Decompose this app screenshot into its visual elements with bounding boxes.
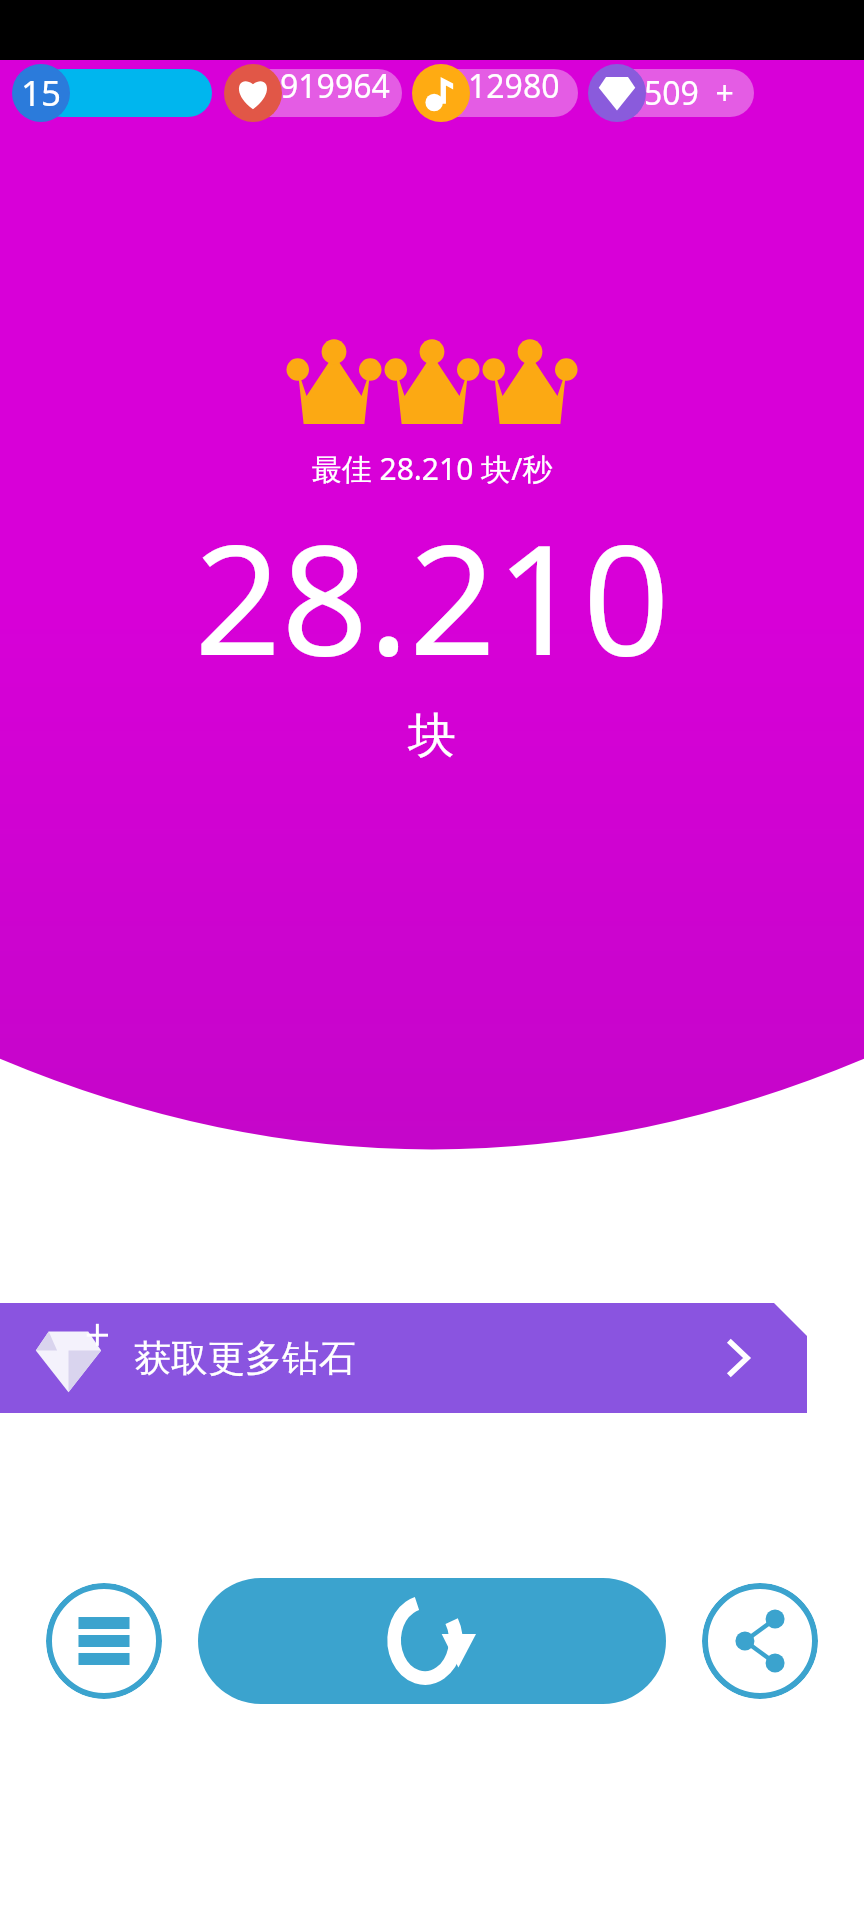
staticText: 28.210 [0, 493, 864, 700]
button[interactable]: 获取更多钻石 [0, 1303, 807, 1413]
button[interactable]: Share [702, 1583, 818, 1699]
button[interactable]: 12980 + [412, 64, 578, 122]
staticText: 最佳 28.210 块/秒 [0, 448, 864, 489]
staticText: 919964+ [280, 64, 402, 122]
button[interactable]: 509 + [588, 64, 754, 122]
staticText: 12980 + [468, 64, 578, 122]
button[interactable]: 15 [12, 64, 212, 122]
button[interactable]: 919964+ [224, 64, 402, 122]
button[interactable]: Restart [198, 1578, 666, 1704]
staticText: 509 + [644, 71, 734, 115]
button[interactable]: Menu [46, 1583, 162, 1699]
staticText: 块 [0, 706, 864, 766]
staticText: 获取更多钻石 [134, 1335, 356, 1382]
staticText: 15 [21, 69, 62, 117]
